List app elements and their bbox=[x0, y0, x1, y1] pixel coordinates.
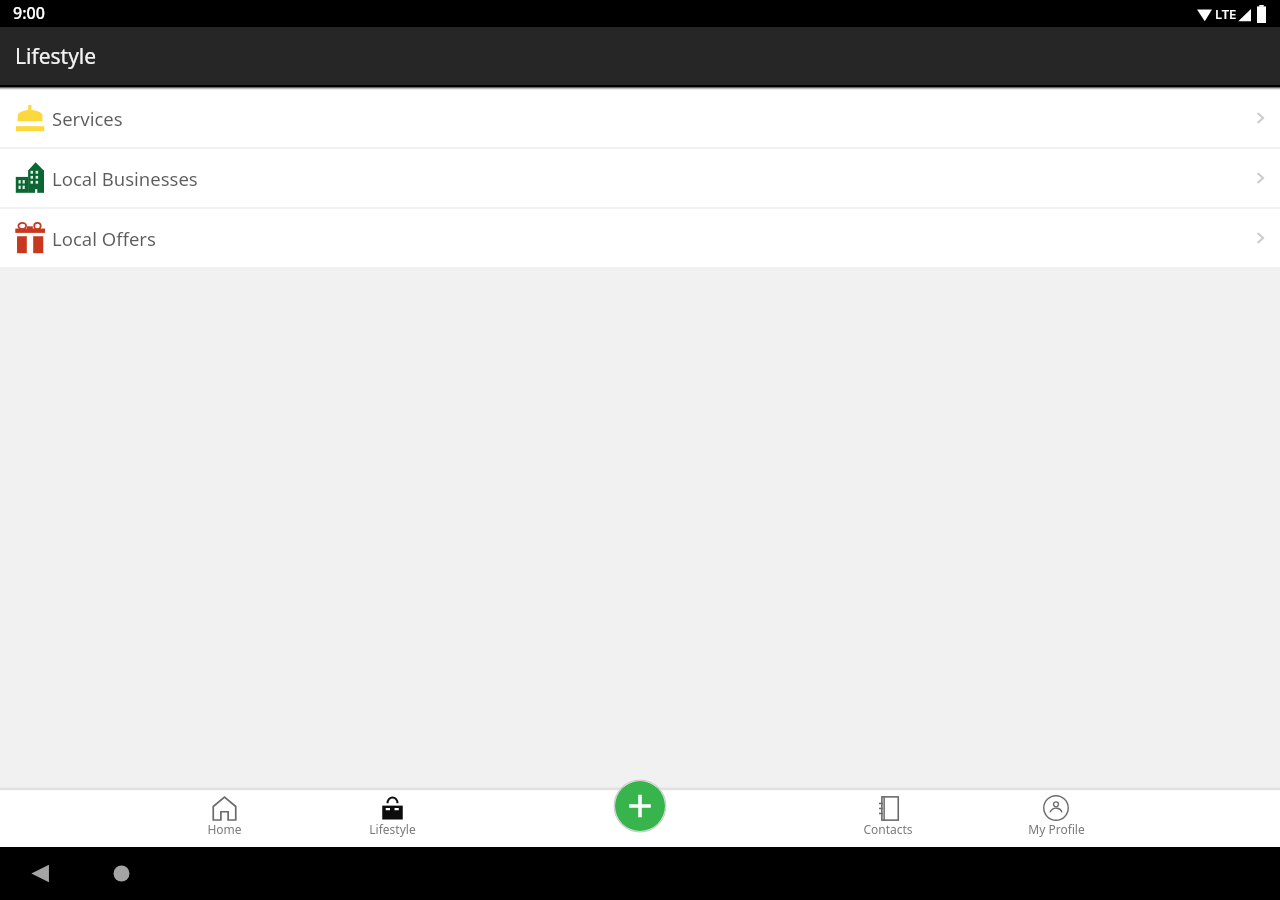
button[interactable]: Contacts bbox=[804, 790, 972, 837]
staticText: Local Offers bbox=[52, 226, 156, 251]
staticText: Lifestyle bbox=[369, 821, 416, 837]
button[interactable]: My Profile bbox=[972, 790, 1140, 837]
staticText: Home bbox=[207, 821, 242, 837]
button[interactable]: Local Offers bbox=[0, 209, 1280, 267]
staticText: 9:00 bbox=[13, 2, 45, 24]
button[interactable]: Add bbox=[615, 781, 665, 831]
staticText: Contacts bbox=[863, 821, 913, 837]
staticText: Lifestyle bbox=[15, 42, 97, 71]
button[interactable]: Services bbox=[0, 89, 1280, 147]
button[interactable]: Local Businesses bbox=[0, 149, 1280, 207]
staticText: My Profile bbox=[1028, 821, 1085, 837]
button[interactable]: Lifestyle bbox=[308, 790, 476, 837]
staticText: LTE bbox=[1215, 5, 1237, 23]
staticText: Local Businesses bbox=[52, 166, 198, 191]
staticText: Services bbox=[52, 106, 123, 131]
button[interactable]: Back bbox=[10, 847, 66, 900]
button[interactable]: Home bbox=[92, 847, 148, 900]
button[interactable]: Home bbox=[140, 790, 308, 837]
